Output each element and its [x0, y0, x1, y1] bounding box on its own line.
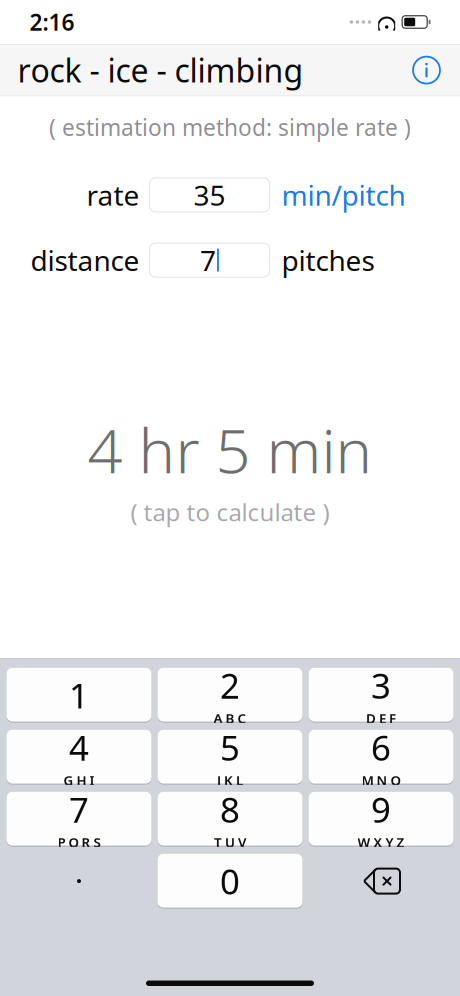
staticText: W X Y Z — [357, 834, 404, 851]
button[interactable]: 8 — [157, 792, 302, 847]
staticText: 2:16 — [29, 7, 74, 37]
staticText: 2 — [220, 663, 240, 709]
staticText: D E F — [366, 710, 396, 727]
staticText: P Q R S — [57, 834, 100, 851]
button[interactable]: 1 — [6, 668, 151, 723]
staticText: G H I — [63, 772, 94, 789]
staticText: 4 — [69, 724, 89, 770]
staticText: J K L — [217, 771, 243, 789]
staticText: distance — [30, 241, 139, 279]
staticText: 4 — [69, 725, 89, 771]
staticText: G H I — [63, 771, 94, 789]
staticText: ( estimation method: simple rate ) — [49, 112, 411, 142]
staticText: M N O — [361, 772, 400, 789]
button[interactable]: 3 — [308, 668, 453, 723]
staticText: 9 — [371, 786, 391, 832]
staticText: 4 hr 5 min — [87, 409, 372, 490]
staticText: 8 — [220, 787, 240, 833]
staticText: 0 — [220, 858, 240, 904]
staticText: W X Y Z — [357, 833, 404, 851]
staticText: J K L — [217, 772, 243, 789]
staticText: ( tap to calculate ) — [130, 496, 329, 528]
button[interactable]: Information — [404, 48, 448, 92]
button[interactable]: 6 — [308, 730, 453, 785]
staticText: 7 — [200, 241, 216, 279]
staticText: 6 — [371, 725, 391, 771]
button[interactable]: 4 hr 5 min — [0, 399, 460, 538]
staticText: 5 — [220, 725, 240, 771]
staticText: 2 — [220, 662, 240, 708]
staticText: 7 — [69, 787, 89, 833]
button[interactable]: 7 — [6, 792, 151, 847]
staticText: A B C — [213, 709, 246, 727]
staticText: 0 — [220, 858, 240, 904]
staticText: 9 — [371, 787, 391, 833]
staticText: 1 — [69, 672, 89, 718]
staticText: 1 — [69, 672, 89, 718]
staticText: 3 — [371, 662, 391, 708]
staticText: M N O — [361, 771, 400, 789]
staticText: 35 — [193, 176, 225, 213]
staticText: T U V — [214, 833, 246, 851]
staticText: 7 — [69, 786, 89, 832]
staticText: P Q R S — [57, 833, 100, 851]
staticText: D E F — [366, 709, 396, 727]
button[interactable]: 4 — [6, 730, 151, 785]
staticText: rock - ice - climbing — [17, 49, 303, 91]
staticText: rate — [86, 176, 139, 213]
staticText: min/pitch — [281, 176, 405, 213]
staticText: 3 — [371, 663, 391, 709]
staticText: 8 — [220, 786, 240, 832]
staticText: T U V — [214, 834, 246, 851]
button[interactable]: 2 — [157, 668, 302, 723]
button[interactable]: 7 — [149, 243, 269, 277]
button[interactable]: 0 — [157, 854, 302, 909]
button[interactable]: 9 — [308, 792, 453, 847]
staticText: pitches — [281, 241, 374, 279]
staticText: A B C — [213, 710, 246, 727]
button[interactable]: Decimal point — [6, 854, 151, 909]
staticText: 5 — [220, 724, 240, 770]
button[interactable]: Delete — [308, 854, 453, 909]
button[interactable]: 5 — [157, 730, 302, 785]
button[interactable]: 35 — [149, 178, 269, 212]
staticText: 6 — [371, 724, 391, 770]
